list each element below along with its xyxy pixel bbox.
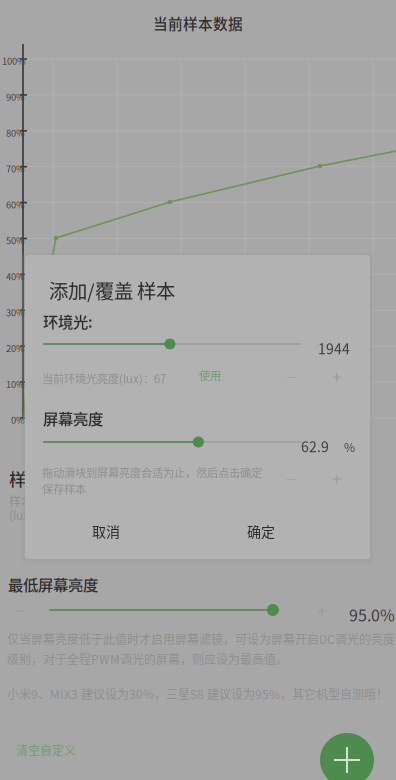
staticText: 10% <box>6 377 25 391</box>
staticText: 取消 <box>92 521 120 541</box>
staticText: 环境光: <box>43 310 93 332</box>
staticText: + <box>332 465 342 491</box>
button[interactable]: 清空自定义 <box>0 735 92 765</box>
button[interactable]: Add sample <box>320 733 374 780</box>
staticText: 当前环境光亮度(lux)：67 <box>42 370 166 386</box>
staticText: 最低屏幕亮度 <box>8 573 98 595</box>
staticText: 0% <box>11 413 25 426</box>
staticText: 1944 <box>318 338 350 358</box>
staticText: 40% <box>6 269 25 283</box>
staticText: 95.0% <box>349 603 395 626</box>
staticText: 级别，对于全程PWM调光的屏幕，则应设为最高值。 <box>7 650 288 667</box>
staticText: 20% <box>6 341 25 355</box>
staticText: 样本1 环境光 <box>9 492 82 509</box>
staticText: (lux)：67 → 屏幕亮度 62.9% <box>9 506 163 523</box>
staticText: 样本列表 <box>9 466 77 491</box>
staticText: 确定 <box>247 521 275 541</box>
button[interactable]: 取消 <box>70 515 142 547</box>
staticText: % <box>344 438 355 455</box>
button[interactable]: Increase brightness <box>325 467 349 489</box>
staticText: 使用 <box>199 367 221 383</box>
button[interactable]: 使用 <box>194 365 226 385</box>
staticText: 小米9、MIX3 建议设为30%，三星S8 建议设为95%，其它机型自测哦！ <box>7 685 388 702</box>
staticText: 100% <box>2 54 26 67</box>
staticText: + <box>332 363 342 389</box>
button[interactable]: Increase ambient light <box>325 365 349 387</box>
staticText: 60% <box>6 198 25 211</box>
staticText: 62.9 <box>301 436 329 456</box>
staticText: 屏幕亮度 <box>43 407 103 429</box>
staticText: 70% <box>6 162 25 175</box>
button[interactable]: 确定 <box>225 515 297 547</box>
staticText: 30% <box>6 305 25 319</box>
staticText: 80% <box>6 126 25 139</box>
staticText: 当前样本数据 <box>153 12 243 34</box>
staticText: 拖动滑块到屏幕亮度合适为止，然后点击确定 保存样本 <box>42 464 262 497</box>
staticText: 清空自定义 <box>16 741 76 759</box>
staticText: 添加/覆盖 样本 <box>49 276 175 304</box>
staticText: 90% <box>6 90 25 103</box>
staticText: 50% <box>6 233 25 247</box>
staticText: 仅当屏幕亮度低于此值时才启用屏幕滤镜，可设为屏幕开启DC调光的亮度 <box>7 630 395 647</box>
